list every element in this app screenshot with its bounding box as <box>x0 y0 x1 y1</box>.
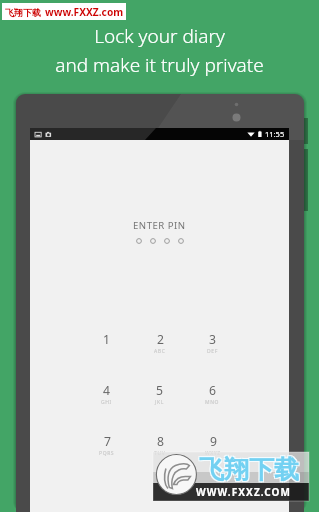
staticText: WWW.FXXZ.COM <box>196 485 292 499</box>
staticText: MNO <box>205 399 220 406</box>
staticText: 11:55 <box>265 129 285 139</box>
staticText: JKL <box>155 399 164 406</box>
staticText: ABC <box>154 348 166 355</box>
staticText: DEF <box>207 348 218 355</box>
staticText: 6 <box>209 382 216 399</box>
button[interactable]: 7 <box>80 433 133 484</box>
staticText: www.FXXZ.com <box>45 5 124 19</box>
staticText: Lock your diary <box>94 23 225 49</box>
staticText: 3 <box>209 331 216 348</box>
staticText: 5 <box>156 382 163 399</box>
staticText: 2 <box>157 331 164 348</box>
staticText: 飞翔下载 <box>5 7 41 18</box>
staticText: 4 <box>103 382 110 399</box>
button[interactable]: 1 <box>80 331 133 382</box>
staticText: ENTER PIN <box>133 219 186 232</box>
staticText: 8 <box>157 433 164 450</box>
button[interactable]: 9 <box>186 433 239 484</box>
staticText: 7 <box>104 433 111 450</box>
staticText: and make it truly private <box>55 52 264 78</box>
button[interactable]: 4 <box>80 382 133 433</box>
staticText: 1 <box>103 331 110 348</box>
staticText: 飞翔下载 <box>200 455 300 486</box>
button[interactable]: 6 <box>186 382 239 433</box>
staticText: 飞翔下载 <box>200 453 300 484</box>
staticText: WXYZ <box>205 450 221 457</box>
button[interactable]: 8 <box>133 433 186 484</box>
staticText: GHI <box>101 399 112 406</box>
staticText: 飞翔下载 <box>198 453 298 484</box>
staticText: PQRS <box>99 450 115 457</box>
staticText: 飞翔下载 <box>199 454 299 485</box>
staticText: 9 <box>210 433 217 450</box>
staticText: 飞翔下载 <box>198 455 298 486</box>
button[interactable]: 2 <box>133 331 186 382</box>
button[interactable]: 5 <box>133 382 186 433</box>
staticText: TUV <box>154 450 166 457</box>
button[interactable]: 3 <box>186 331 239 382</box>
